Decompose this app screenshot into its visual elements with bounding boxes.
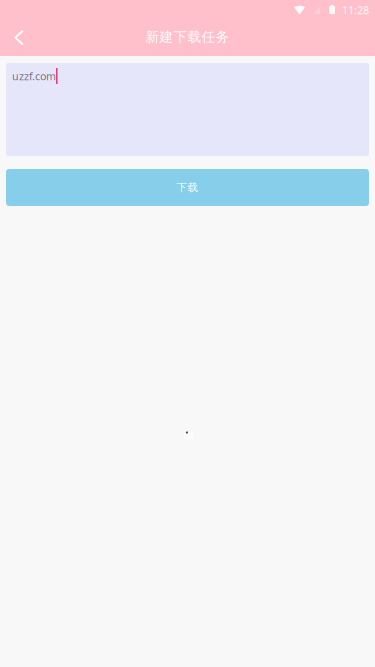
button[interactable]: Download URL <box>6 63 369 156</box>
staticText: 新建下载任务 <box>145 28 229 45</box>
button[interactable]: Back <box>0 20 38 56</box>
staticText: 11:28 <box>342 3 369 17</box>
staticText: uzzf.com <box>12 69 56 83</box>
staticText: 下载 <box>176 181 198 194</box>
button[interactable]: 下载 <box>6 169 369 206</box>
